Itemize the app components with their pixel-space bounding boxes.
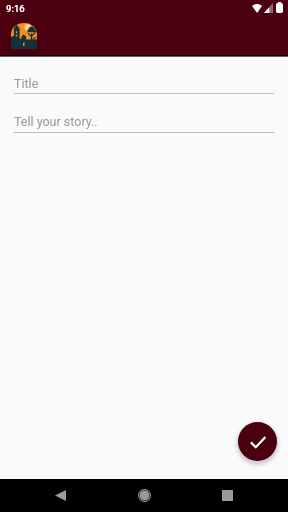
button[interactable]: Save story <box>238 422 277 461</box>
button[interactable]: Recent apps <box>215 483 239 507</box>
staticText: 9:16 <box>6 3 25 14</box>
button[interactable]: Back <box>48 483 72 507</box>
button[interactable]: Tell your story.. <box>14 114 98 129</box>
button[interactable]: Home <box>132 483 156 507</box>
button[interactable]: Title <box>14 76 39 91</box>
button[interactable]: App logo <box>11 23 37 49</box>
